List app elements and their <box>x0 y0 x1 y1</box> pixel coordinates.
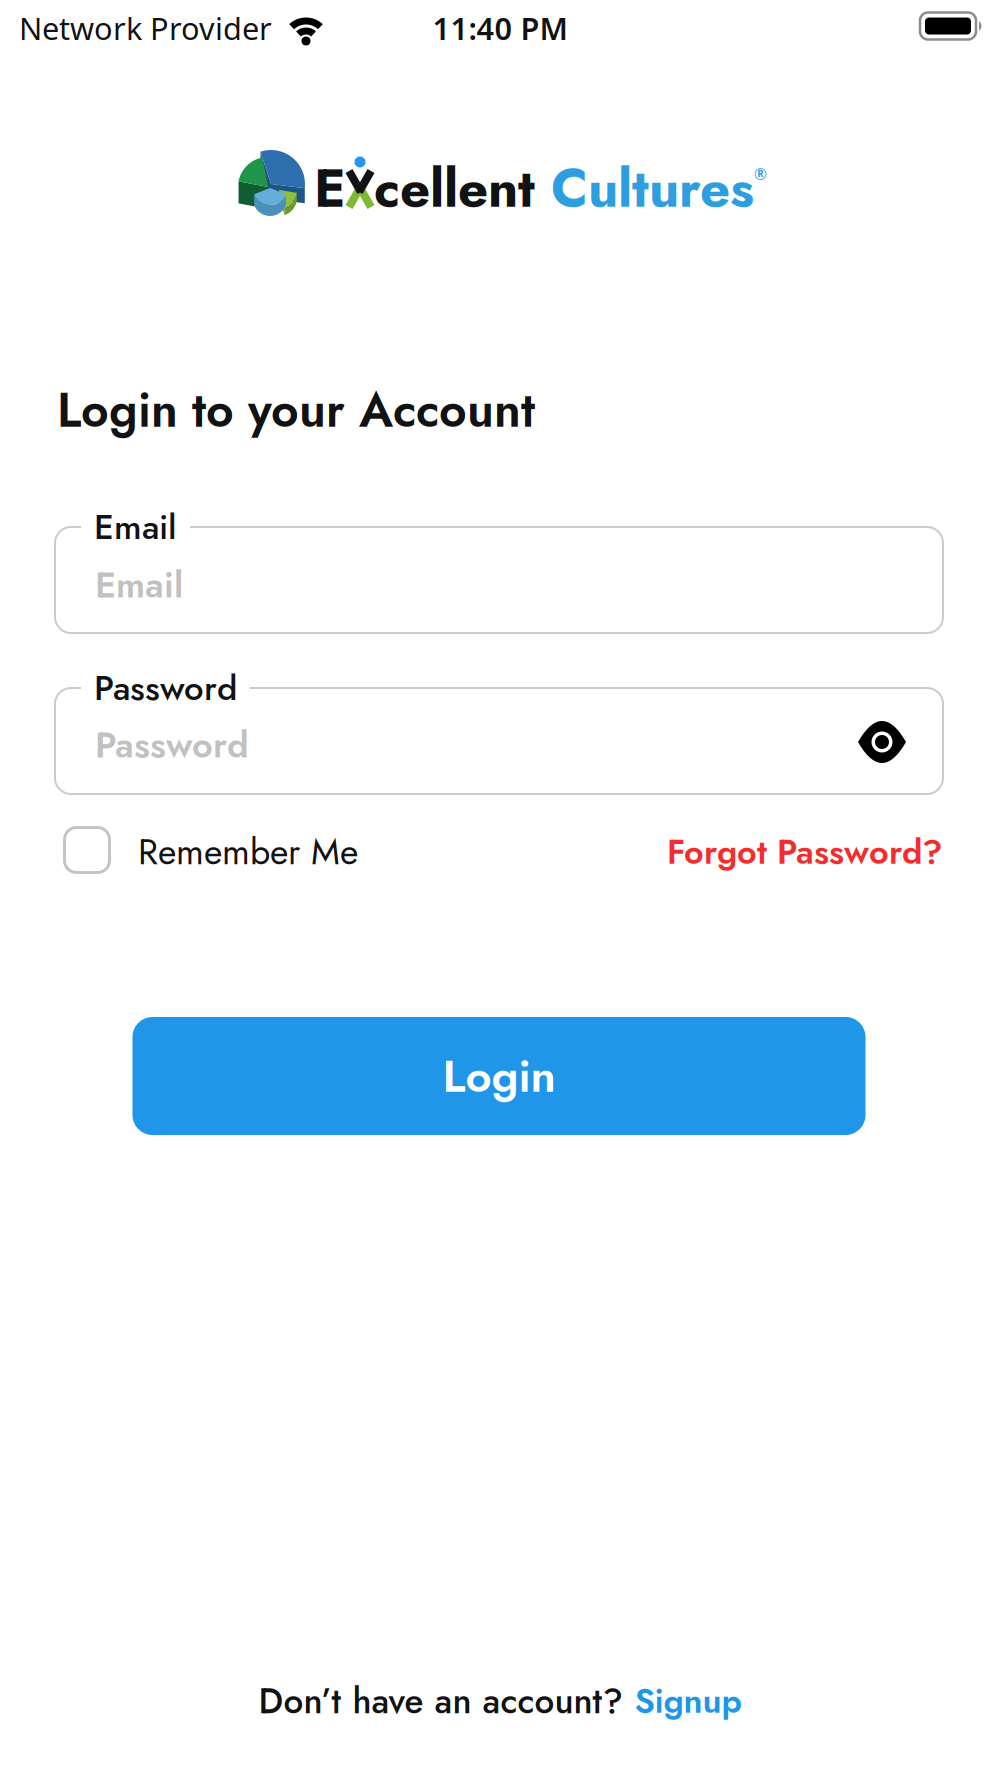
staticText: Network Provider <box>19 8 272 48</box>
staticText: Password <box>95 719 249 771</box>
staticText: cellent <box>374 150 535 226</box>
staticText: Login to your Account <box>57 375 535 445</box>
staticText: 11:40 PM <box>432 8 567 48</box>
staticText: Don’t have an account? <box>258 1676 623 1726</box>
staticText: ® <box>754 163 767 186</box>
staticText: Cultures <box>535 150 754 226</box>
staticText: E <box>314 150 346 226</box>
staticText: Email <box>95 559 183 611</box>
staticText: Forgot Password? <box>667 827 943 876</box>
staticText: Signup <box>634 1676 741 1725</box>
staticText: Login <box>442 1043 555 1109</box>
staticText: Remember Me <box>138 826 358 878</box>
staticText: Email <box>94 502 177 552</box>
staticText: Password <box>94 663 237 713</box>
